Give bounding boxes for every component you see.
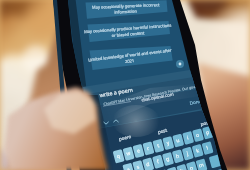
button[interactable]: Phone screen [0, 0, 250, 170]
